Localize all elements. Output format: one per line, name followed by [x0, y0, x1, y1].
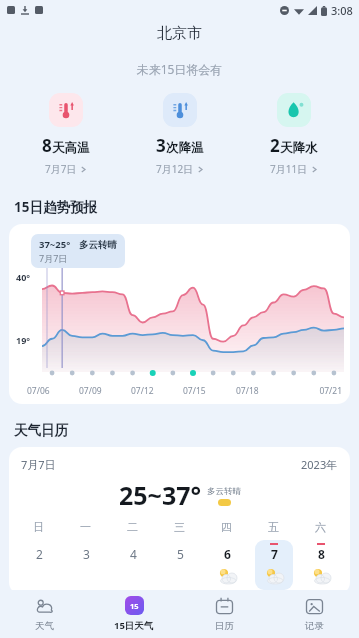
button[interactable]: 记录 [269, 597, 359, 632]
staticText: 7月7日 [21, 457, 56, 472]
staticText: 天气日历 [14, 422, 68, 439]
staticText: 40° [16, 271, 31, 283]
button[interactable]: 日历 [179, 597, 269, 632]
button[interactable]: 7 [250, 540, 297, 590]
staticText: 07/15 [183, 385, 236, 397]
button[interactable]: 15日天气 [89, 596, 179, 632]
staticText: 15日趋势预报 [14, 198, 97, 216]
staticText: 多云转晴 [79, 239, 117, 251]
staticText: 3 [156, 134, 166, 157]
staticText: 07/06 [27, 385, 79, 397]
staticText: 天降水 [280, 140, 318, 156]
staticText: 3:08 [331, 3, 353, 18]
staticText: 2 [36, 546, 43, 562]
button[interactable]: 2 [15, 540, 62, 590]
button[interactable]: 3 [62, 540, 109, 590]
staticText: 19° [16, 334, 31, 346]
staticText: 二 [109, 520, 156, 534]
button[interactable]: 8 [297, 540, 344, 590]
button[interactable]: 3 [123, 91, 237, 178]
button[interactable]: 5 [156, 540, 203, 590]
button[interactable]: 天气 [0, 597, 89, 632]
staticText: 2023年 [301, 457, 338, 472]
staticText: 未来15日将会有 [0, 61, 359, 77]
staticText: 4 [130, 546, 137, 562]
staticText: 天高温 [52, 140, 90, 156]
staticText: 8 [318, 546, 325, 562]
staticText: 六 [297, 520, 344, 534]
staticText: 记录 [305, 620, 324, 632]
staticText: 一 [62, 520, 109, 534]
staticText: 37~25° [39, 238, 71, 251]
staticText: 15日天气 [114, 619, 154, 632]
staticText: 7月7日 [39, 252, 68, 264]
staticText: 3 [83, 546, 90, 562]
staticText: 五 [250, 520, 297, 534]
staticText: 北京市 [0, 24, 359, 43]
button[interactable]: 40° [9, 224, 350, 404]
staticText: 天气 [35, 620, 54, 632]
button[interactable]: 8 [8, 91, 123, 178]
staticText: 07/21 [289, 385, 342, 397]
staticText: 7 [271, 546, 278, 562]
button[interactable]: 4 [109, 540, 156, 590]
staticText: 6 [224, 546, 231, 562]
staticText: 多云转晴 [207, 486, 241, 497]
staticText: 07/12 [131, 385, 183, 397]
staticText: 25~37° [119, 478, 202, 512]
staticText: 三 [156, 520, 203, 534]
button[interactable]: 6 [203, 540, 250, 590]
staticText: 次降温 [166, 140, 204, 156]
staticText: 5 [177, 546, 184, 562]
staticText: 日历 [215, 620, 234, 632]
staticText: 15 [130, 601, 139, 611]
staticText: 7月11日 [270, 162, 308, 176]
staticText: 日 [15, 520, 62, 534]
staticText: 四 [203, 520, 250, 534]
staticText: 7月7日 [45, 162, 77, 176]
staticText: 8 [42, 134, 52, 157]
staticText: 07/09 [79, 385, 131, 397]
staticText: 7月12日 [156, 162, 194, 176]
staticText: 2 [270, 134, 280, 157]
button[interactable]: 2 [237, 91, 351, 178]
staticText: 07/18 [236, 385, 289, 397]
